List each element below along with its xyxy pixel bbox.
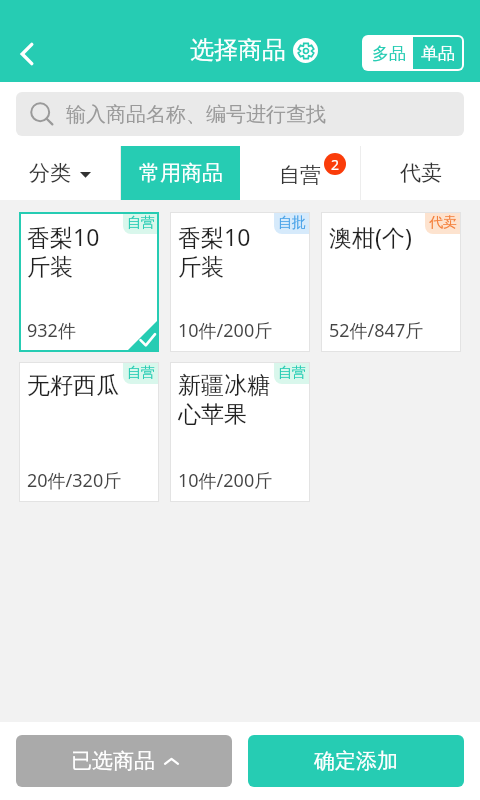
- staticText: 代卖: [429, 214, 457, 232]
- button[interactable]: 确定添加: [248, 735, 464, 787]
- staticText: 自营: [127, 214, 155, 232]
- staticText: 多品: [372, 43, 406, 64]
- staticText: 选择商品: [190, 35, 286, 65]
- staticText: 新疆冰糖心苹果: [178, 371, 271, 428]
- staticText: 20件/320斤: [27, 468, 122, 493]
- button[interactable]: 单品: [413, 37, 462, 69]
- staticText: 常用商品: [139, 160, 223, 186]
- button[interactable]: 常用商品: [121, 146, 240, 200]
- staticText: 分类: [29, 160, 71, 186]
- staticText: 自批: [278, 214, 306, 232]
- staticText: 932件: [27, 318, 76, 343]
- staticText: 10件/200斤: [178, 468, 273, 493]
- staticText: 2: [331, 155, 340, 174]
- staticText: 自营: [127, 364, 155, 382]
- staticText: 10件/200斤: [178, 318, 273, 343]
- button[interactable]: 分类: [0, 146, 120, 200]
- button[interactable]: 代卖: [321, 212, 461, 352]
- button[interactable]: 代卖: [361, 146, 480, 200]
- staticText: 单品: [421, 43, 455, 64]
- button[interactable]: 自批: [170, 212, 310, 352]
- button[interactable]: 已选商品: [16, 735, 232, 787]
- button[interactable]: Back: [1, 28, 53, 80]
- staticText: 香梨10斤装: [27, 221, 120, 281]
- staticText: 代卖: [400, 160, 442, 186]
- staticText: 确定添加: [314, 748, 398, 774]
- staticText: 输入商品名称、编号进行查找: [66, 102, 326, 127]
- staticText: 已选商品: [71, 748, 155, 774]
- button[interactable]: 输入商品名称、编号进行查找: [16, 92, 464, 136]
- staticText: 自营: [278, 364, 306, 382]
- button[interactable]: 自营: [19, 362, 159, 502]
- staticText: 自营: [279, 162, 321, 188]
- staticText: 澳柑(个): [329, 221, 412, 252]
- staticText: 香梨10斤装: [178, 221, 271, 281]
- button[interactable]: 多品: [364, 37, 413, 69]
- button[interactable]: Settings: [292, 37, 318, 63]
- staticText: 无籽西瓜: [27, 371, 119, 400]
- staticText: 52件/847斤: [329, 318, 424, 343]
- button[interactable]: 自营: [170, 362, 310, 502]
- button[interactable]: 自营: [240, 146, 360, 200]
- button[interactable]: 自营: [19, 212, 159, 352]
